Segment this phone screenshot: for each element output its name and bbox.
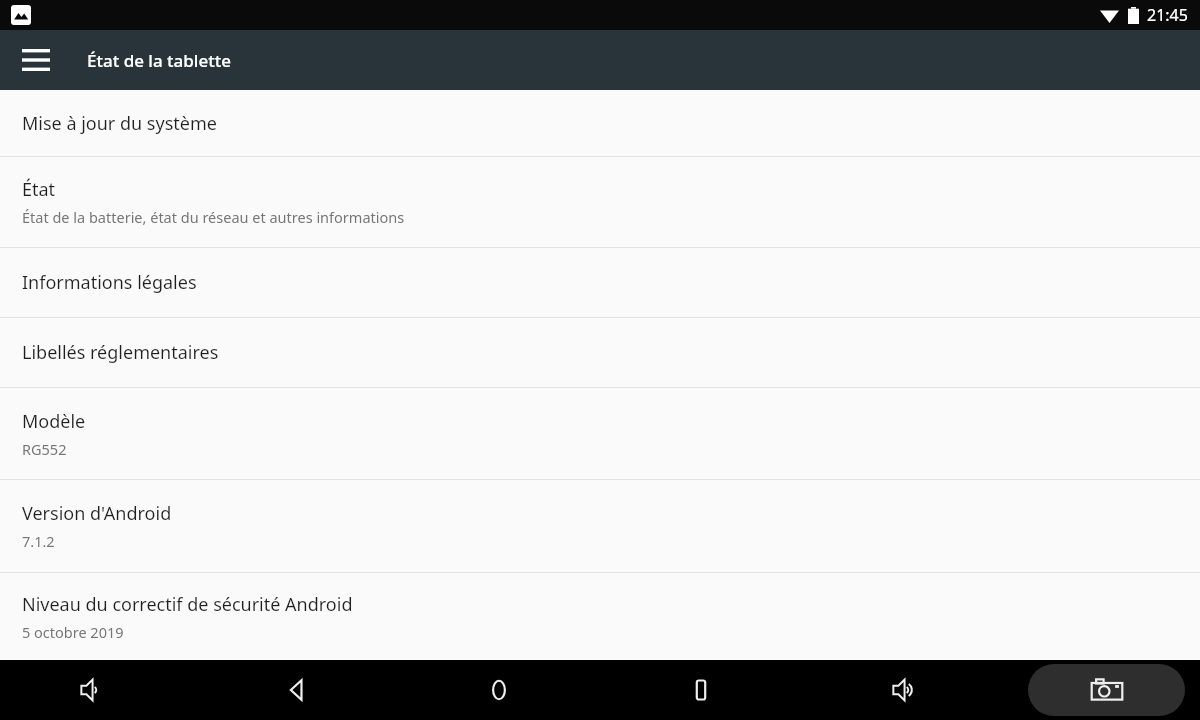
staticText: 5 octobre 2019 [22, 622, 124, 642]
staticText: 7.1.2 [22, 531, 55, 551]
button[interactable]: Mise à jour du système [0, 90, 1200, 156]
button[interactable]: Version d'Android [0, 480, 1200, 572]
button[interactable]: Libellés réglementaires [0, 318, 1200, 387]
button[interactable]: Menu [12, 36, 60, 84]
staticText: État de la batterie, état du réseau et a… [22, 207, 405, 227]
staticText: Libellés réglementaires [22, 340, 219, 365]
button[interactable]: Screenshot [1028, 664, 1185, 716]
staticText: Modèle [22, 409, 86, 434]
button[interactable]: Modèle [0, 388, 1200, 479]
staticText: Mise à jour du système [22, 111, 217, 136]
button[interactable]: État [0, 157, 1200, 247]
button[interactable]: Niveau du correctif de sécurité Android [0, 573, 1200, 660]
staticText: État [22, 177, 56, 202]
staticText: Niveau du correctif de sécurité Android [22, 592, 353, 617]
button[interactable]: Back [273, 666, 321, 714]
staticText: Informations légales [22, 270, 197, 295]
button[interactable]: Volume down [68, 666, 116, 714]
button[interactable]: Informations légales [0, 248, 1200, 317]
staticText: 21:45 [1147, 4, 1188, 26]
button[interactable]: Volume up [880, 666, 928, 714]
staticText: État de la tablette [87, 49, 231, 72]
staticText: Version d'Android [22, 501, 172, 526]
staticText: RG552 [22, 439, 67, 459]
button[interactable]: Recent apps [677, 666, 725, 714]
button[interactable]: Home [475, 666, 523, 714]
